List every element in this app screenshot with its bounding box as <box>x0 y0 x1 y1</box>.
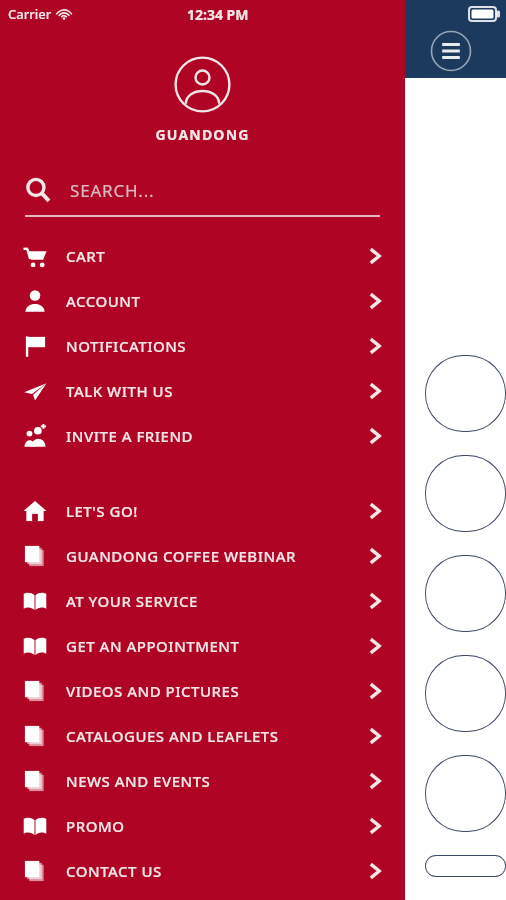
button[interactable]: GUANDONG COFFEE WEBINAR <box>0 533 405 578</box>
button[interactable] <box>425 855 506 877</box>
button[interactable]: NOTIFICATIONS <box>0 323 405 368</box>
staticText: NEWS AND EVENTS <box>66 771 369 791</box>
staticText: Carrier <box>8 5 52 23</box>
staticText: GET AN APPOINTMENT <box>66 636 369 656</box>
staticText: PROMO <box>66 816 369 836</box>
staticText: CART <box>66 246 369 266</box>
button[interactable]: GET AN APPOINTMENT <box>0 623 405 668</box>
button[interactable] <box>425 755 506 832</box>
staticText: CONTACT US <box>66 861 369 881</box>
button[interactable]: CART <box>0 233 405 278</box>
button[interactable] <box>425 355 506 432</box>
button[interactable] <box>425 655 506 732</box>
button[interactable] <box>425 555 506 632</box>
staticText: TALK WITH US <box>66 381 369 401</box>
button[interactable]: PROMO <box>0 803 405 848</box>
staticText: AT YOUR SERVICE <box>66 591 369 611</box>
button[interactable]: SEARCH... <box>25 177 380 217</box>
button[interactable]: NEWS AND EVENTS <box>0 758 405 803</box>
button[interactable]: Open menu <box>430 30 472 72</box>
staticText: GUANDONG <box>155 125 250 144</box>
staticText: INVITE A FRIEND <box>66 426 369 446</box>
button[interactable]: CATALOGUES AND LEAFLETS <box>0 713 405 758</box>
button[interactable]: CONTACT US <box>0 848 405 893</box>
button[interactable]: INVITE A FRIEND <box>0 413 405 458</box>
staticText: NOTIFICATIONS <box>66 336 369 356</box>
button[interactable]: Profile <box>174 56 231 113</box>
staticText: CATALOGUES AND LEAFLETS <box>66 726 369 746</box>
staticText: ACCOUNT <box>66 291 369 311</box>
button[interactable]: TALK WITH US <box>0 368 405 413</box>
button[interactable]: ACCOUNT <box>0 278 405 323</box>
button[interactable]: VIDEOS AND PICTURES <box>0 668 405 713</box>
staticText: GUANDONG COFFEE WEBINAR <box>66 546 369 566</box>
button[interactable] <box>425 455 506 532</box>
other: Battery <box>469 5 501 23</box>
staticText: SEARCH... <box>70 179 155 202</box>
staticText: VIDEOS AND PICTURES <box>66 681 369 701</box>
button[interactable]: LET'S GO! <box>0 488 405 533</box>
button[interactable]: AT YOUR SERVICE <box>0 578 405 623</box>
staticText: 12:34 PM <box>187 5 249 24</box>
staticText: LET'S GO! <box>66 501 369 521</box>
